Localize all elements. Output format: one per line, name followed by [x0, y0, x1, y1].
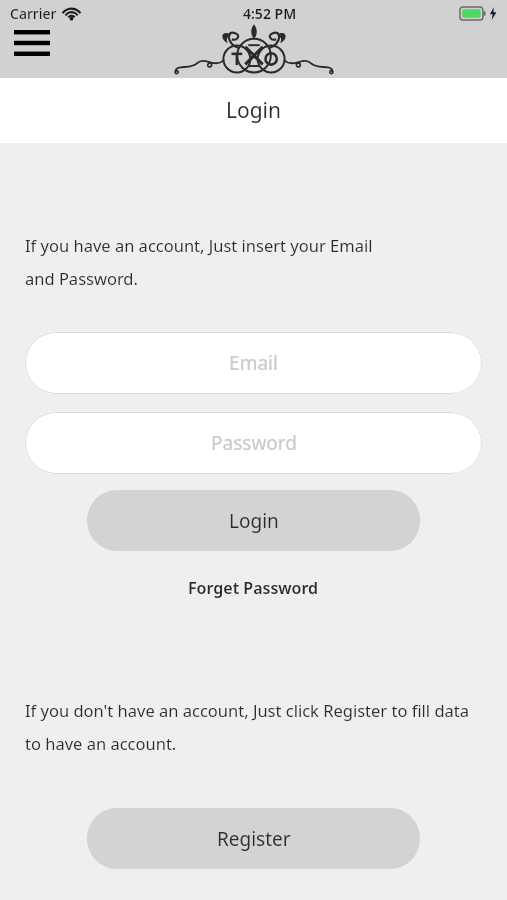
- button[interactable]: Menu: [14, 28, 54, 58]
- staticText: Email: [229, 350, 278, 376]
- button[interactable]: Login: [87, 490, 420, 551]
- staticText: Register: [217, 826, 291, 852]
- staticText: Forget Password: [188, 577, 319, 599]
- staticText: Login: [226, 96, 282, 125]
- staticText: Password: [211, 430, 297, 456]
- staticText: Login: [229, 508, 279, 534]
- staticText: If you don't have an account, Just click…: [25, 699, 470, 755]
- button[interactable]: Register: [87, 808, 420, 869]
- staticText: Carrier: [10, 4, 57, 23]
- staticText: If you have an account, Just insert your…: [25, 234, 373, 290]
- button[interactable]: Email: [25, 332, 482, 394]
- button[interactable]: Forget Password: [0, 577, 507, 599]
- staticText: 4:52 PM: [243, 4, 297, 23]
- button[interactable]: Password: [25, 412, 482, 474]
